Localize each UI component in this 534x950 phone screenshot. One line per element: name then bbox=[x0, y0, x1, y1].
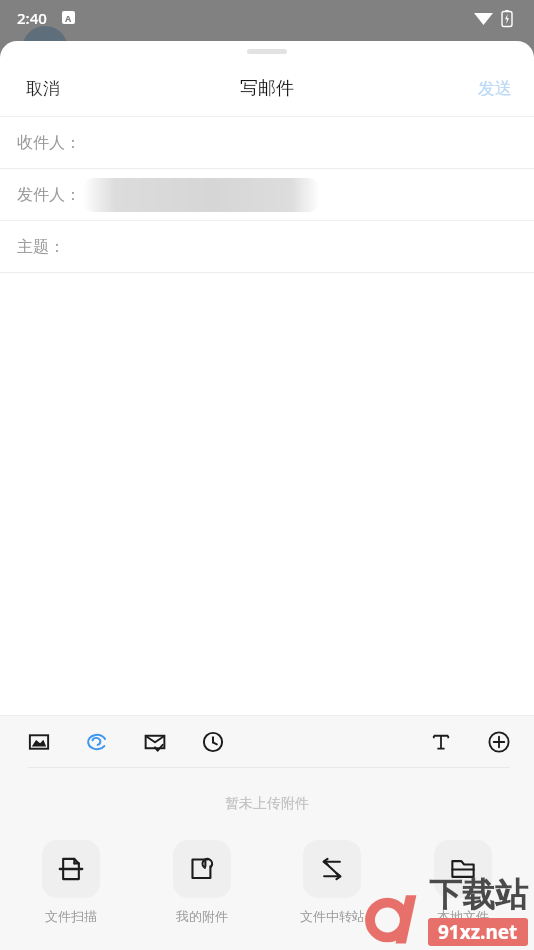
button[interactable]: 发件人： bbox=[0, 169, 534, 220]
staticText: 2:40 bbox=[17, 8, 47, 28]
staticText: 我的附件 bbox=[176, 908, 228, 924]
button[interactable]: 文件中转站 bbox=[277, 840, 387, 924]
button[interactable]: 主题： bbox=[0, 221, 534, 272]
staticText: 主题： bbox=[17, 237, 65, 257]
staticText: 本地文件 bbox=[437, 908, 489, 924]
button[interactable]: Insert image bbox=[24, 727, 54, 757]
staticText: 写邮件 bbox=[240, 77, 294, 100]
staticText: 91xz.net bbox=[438, 919, 518, 945]
staticText: 暂未上传附件 bbox=[225, 795, 309, 813]
button[interactable]: Read receipt bbox=[140, 727, 170, 757]
button[interactable]: 文件扫描 bbox=[16, 840, 126, 924]
staticText: 发送 bbox=[478, 78, 512, 99]
button[interactable]: 本地文件 bbox=[408, 840, 518, 924]
button[interactable]: Schedule send bbox=[198, 727, 228, 757]
staticText: 下载站 bbox=[429, 874, 528, 916]
staticText: 收件人： bbox=[17, 133, 81, 153]
staticText: 取消 bbox=[26, 78, 60, 99]
button[interactable]: Text format bbox=[426, 727, 456, 757]
staticText: 发件人： bbox=[17, 185, 81, 205]
button[interactable]: 取消 bbox=[0, 61, 86, 116]
staticText: 文件中转站 bbox=[300, 908, 365, 924]
button[interactable]: Signature bbox=[82, 727, 112, 757]
button[interactable]: 我的附件 bbox=[147, 840, 257, 924]
button[interactable]: 收件人： bbox=[0, 117, 534, 168]
button[interactable]: 发送 bbox=[456, 61, 534, 116]
staticText: 文件扫描 bbox=[45, 908, 97, 924]
button[interactable]: More options bbox=[484, 727, 514, 757]
staticText: A bbox=[65, 12, 72, 24]
